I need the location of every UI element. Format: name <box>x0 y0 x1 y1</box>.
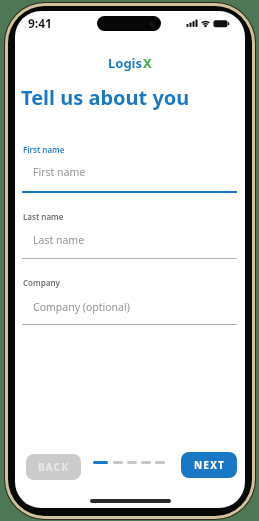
staticText: X <box>143 54 152 72</box>
button[interactable]: First name <box>22 161 237 193</box>
staticText: Last name <box>33 233 85 247</box>
staticText: Company (optional) <box>33 300 130 314</box>
staticText: First name <box>33 165 86 179</box>
staticText: NEXT <box>194 458 225 472</box>
button[interactable]: Company (optional) <box>22 296 237 325</box>
staticText: Logis <box>108 54 143 72</box>
staticText: BACK <box>38 460 70 474</box>
staticText: Company <box>23 277 60 288</box>
staticText: 9:41 <box>28 15 52 31</box>
button[interactable]: BACK <box>26 454 81 480</box>
button[interactable]: NEXT <box>181 452 237 478</box>
staticText: First name <box>23 144 65 155</box>
button[interactable]: Last name <box>22 229 237 259</box>
staticText: Last name <box>23 211 64 222</box>
staticText: Tell us about you <box>21 84 190 111</box>
